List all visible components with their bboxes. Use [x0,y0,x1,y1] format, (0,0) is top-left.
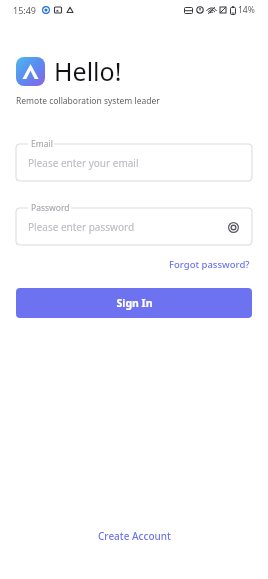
staticText: 15:49 [13,4,37,16]
button[interactable]: Please enter password [16,208,252,245]
staticText: Sign In [116,296,153,310]
button[interactable]: Sign In [16,288,252,318]
staticText: Forgot password? [169,258,250,271]
staticText: Create Account [98,529,171,543]
button[interactable]: Show password [224,218,242,236]
staticText: 14% [238,4,255,16]
staticText: Please enter your email [28,156,242,170]
button[interactable]: Forgot password? [167,255,252,274]
staticText: Password [31,202,70,214]
staticText: Remote collaboration system leader [16,95,160,107]
staticText: Email [31,138,53,150]
other: App logo [16,57,45,86]
button[interactable]: Please enter your email [16,144,252,181]
staticText: Please enter password [28,220,224,234]
button[interactable]: Create Account [92,525,177,547]
staticText: Hello! [54,54,122,88]
